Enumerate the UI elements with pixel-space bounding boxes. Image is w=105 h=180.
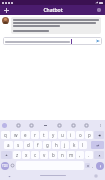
staticText: . xyxy=(88,152,90,158)
staticText: d xyxy=(27,142,30,148)
button[interactable]: p xyxy=(85,131,93,139)
staticText: a xyxy=(7,142,10,148)
button[interactable]: , xyxy=(76,151,84,159)
button[interactable]: Keyboard tool 6 xyxy=(84,123,89,128)
button[interactable]: Recents xyxy=(93,173,99,179)
staticText: h xyxy=(55,142,58,148)
staticText: . xyxy=(92,163,94,169)
staticText: l xyxy=(82,142,84,148)
staticText: j xyxy=(64,142,66,148)
button[interactable]: Voice input xyxy=(96,162,104,170)
button[interactable]: z xyxy=(13,151,21,159)
button[interactable]: Send xyxy=(96,39,100,43)
button[interactable]: Keyboard tool 1 xyxy=(16,123,21,128)
staticText: r xyxy=(34,132,36,138)
button[interactable]: x xyxy=(22,151,30,159)
staticText: f xyxy=(37,142,39,148)
button[interactable]: u xyxy=(58,131,66,139)
button[interactable]: n xyxy=(58,151,66,159)
button[interactable]: y xyxy=(49,131,57,139)
button[interactable]: r xyxy=(31,131,39,139)
button[interactable]: Keyboard tool 4 xyxy=(57,123,62,128)
staticText: ?123 xyxy=(2,164,8,168)
button[interactable]: Backspace xyxy=(94,131,104,139)
button[interactable]: Keyboard tool 3 xyxy=(43,123,48,128)
button[interactable]: l xyxy=(79,141,87,149)
staticText: g xyxy=(46,142,49,148)
button[interactable]: Settings xyxy=(95,6,103,14)
button[interactable]: Delete xyxy=(94,151,104,159)
button[interactable]: Enter xyxy=(91,141,104,149)
button[interactable]: b xyxy=(49,151,57,159)
button[interactable]: New chat xyxy=(2,6,10,14)
button[interactable]: m xyxy=(67,151,75,159)
button[interactable]: w xyxy=(11,131,20,139)
staticText: , xyxy=(79,152,81,158)
staticText: t xyxy=(43,132,45,138)
button[interactable]: c xyxy=(31,151,39,159)
button[interactable]: a xyxy=(4,141,13,149)
button[interactable]: s xyxy=(14,141,23,149)
button[interactable]: o xyxy=(76,131,84,139)
button[interactable]: Period xyxy=(91,161,95,170)
button[interactable]: Shift xyxy=(1,151,12,159)
button[interactable]: Emoji xyxy=(10,161,15,170)
button[interactable]: More options xyxy=(98,123,103,128)
button[interactable]: e xyxy=(21,131,30,139)
staticText: u xyxy=(61,132,64,138)
button[interactable]: v xyxy=(40,151,48,159)
button[interactable]: . xyxy=(85,151,93,159)
button[interactable]: h xyxy=(52,141,60,149)
button[interactable]: j xyxy=(61,141,69,149)
staticText: Chatbot xyxy=(43,7,63,14)
button[interactable]: Symbols xyxy=(1,162,9,170)
button[interactable]: Assistant xyxy=(2,123,7,128)
button[interactable] xyxy=(11,17,101,34)
staticText: s xyxy=(17,142,20,148)
staticText: w xyxy=(14,132,18,138)
button[interactable]: q xyxy=(1,131,10,139)
staticText: e xyxy=(24,132,27,138)
staticText: c xyxy=(34,152,37,158)
button[interactable]: f xyxy=(34,141,42,149)
button[interactable]: Back xyxy=(6,173,12,179)
button[interactable]: d xyxy=(24,141,33,149)
staticText: x xyxy=(25,152,28,158)
staticText: v xyxy=(43,152,46,158)
button[interactable]: Keyboard tool 5 xyxy=(71,123,76,128)
staticText: b xyxy=(52,152,55,158)
button[interactable]: k xyxy=(70,141,78,149)
button[interactable]: Keyboard tool 2 xyxy=(29,123,34,128)
button[interactable]: Send xyxy=(3,37,102,45)
button[interactable]: i xyxy=(67,131,75,139)
staticText: k xyxy=(73,142,76,148)
button[interactable]: Settings xyxy=(85,163,90,168)
staticText: m xyxy=(69,152,74,158)
staticText: y xyxy=(52,132,55,138)
staticText: p xyxy=(88,132,91,138)
staticText: i xyxy=(70,132,72,138)
button[interactable]: t xyxy=(40,131,48,139)
staticText: o xyxy=(79,132,82,138)
staticText: q xyxy=(4,132,7,138)
staticText: z xyxy=(16,152,19,158)
button[interactable]: g xyxy=(43,141,51,149)
staticText: n xyxy=(61,152,64,158)
